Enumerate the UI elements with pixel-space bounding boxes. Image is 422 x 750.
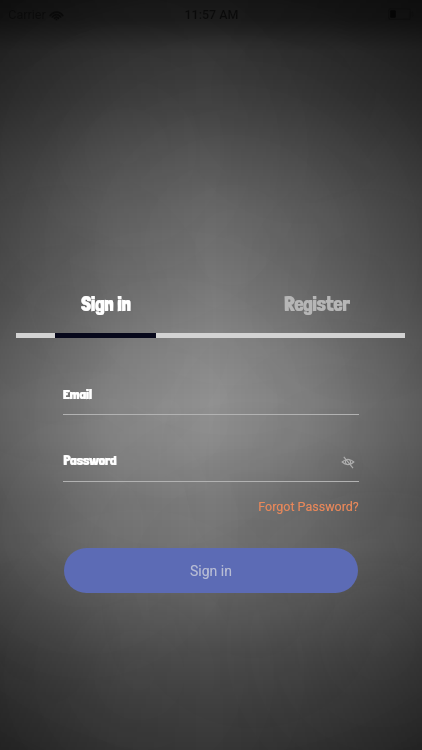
button[interactable]: Toggle password visibility [337,451,359,473]
staticText: Sign in [190,563,232,579]
staticText: Password [63,452,117,469]
staticText: Forgot Password? [258,499,359,514]
staticText: Email [63,386,92,403]
button[interactable]: Sign in [64,548,358,593]
staticText: Sign in [81,292,131,316]
staticText: 11:57 AM [184,7,239,22]
staticText: Register [284,292,350,316]
button[interactable]: Register [211,292,422,318]
button[interactable]: Forgot Password? [258,499,359,514]
button[interactable]: Sign in [0,292,211,318]
